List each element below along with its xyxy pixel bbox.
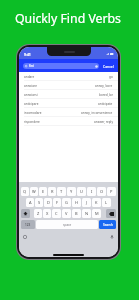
staticText: anticipate bbox=[98, 102, 113, 106]
staticText: P bbox=[110, 189, 113, 194]
button[interactable]: andare bbox=[19, 72, 118, 81]
staticText: Search bbox=[103, 223, 113, 227]
staticText: annoiarsi bbox=[24, 93, 38, 97]
button[interactable]: W bbox=[30, 187, 38, 196]
staticText: S bbox=[38, 200, 41, 205]
staticText: L bbox=[105, 200, 108, 205]
staticText: space bbox=[63, 223, 72, 227]
staticText: J bbox=[86, 200, 88, 205]
button[interactable] bbox=[106, 209, 116, 218]
button[interactable]: H bbox=[72, 198, 81, 207]
button[interactable]: J bbox=[82, 198, 91, 207]
button[interactable]: Z bbox=[34, 209, 42, 218]
staticText: I bbox=[91, 189, 93, 194]
button[interactable]: Q bbox=[21, 187, 29, 196]
button[interactable]: 123 bbox=[21, 220, 35, 229]
button[interactable]: annoiarsi bbox=[19, 90, 118, 99]
staticText: Q bbox=[23, 189, 27, 194]
staticText: G bbox=[65, 200, 68, 205]
button[interactable]: F bbox=[53, 198, 61, 207]
staticText: K bbox=[95, 200, 98, 205]
staticText: A bbox=[29, 200, 32, 205]
staticText: Z bbox=[37, 211, 40, 216]
staticText: andare bbox=[24, 75, 35, 79]
staticText: C bbox=[55, 211, 58, 216]
staticText: H bbox=[75, 200, 78, 205]
button[interactable]: S bbox=[35, 198, 43, 207]
button[interactable]: C bbox=[52, 209, 61, 218]
staticText: 123 bbox=[25, 223, 31, 227]
staticText: 9:41 bbox=[24, 52, 31, 57]
button[interactable]: I bbox=[87, 187, 96, 196]
button[interactable]: incomodare bbox=[19, 108, 118, 117]
staticText: W bbox=[32, 189, 36, 194]
staticText: annoiare bbox=[24, 84, 37, 88]
button[interactable]: X bbox=[43, 209, 51, 218]
button[interactable]: Emoji bbox=[22, 234, 28, 240]
staticText: O bbox=[100, 189, 104, 194]
staticText: F bbox=[56, 200, 59, 205]
button[interactable]: U bbox=[77, 187, 86, 196]
button[interactable]: A bbox=[26, 198, 34, 207]
staticText: bored, be bbox=[99, 93, 113, 97]
button[interactable]: annoiare bbox=[19, 81, 118, 90]
button[interactable]: G bbox=[62, 198, 71, 207]
button[interactable] bbox=[21, 209, 30, 218]
staticText: incomodare bbox=[24, 111, 42, 115]
button[interactable]: anticipare bbox=[19, 99, 118, 108]
button[interactable]: L bbox=[102, 198, 111, 207]
button[interactable]: Cancel bbox=[103, 64, 114, 69]
staticText: E bbox=[42, 189, 45, 194]
staticText: B bbox=[75, 211, 78, 216]
button[interactable]: O bbox=[97, 187, 106, 196]
staticText: V bbox=[65, 211, 68, 216]
button[interactable]: T bbox=[57, 187, 66, 196]
button[interactable]: V bbox=[62, 209, 71, 218]
staticText: anticipare bbox=[24, 102, 39, 106]
button[interactable]: B bbox=[72, 209, 81, 218]
staticText: T bbox=[60, 189, 63, 194]
staticText: X bbox=[46, 211, 49, 216]
button[interactable]: E bbox=[39, 187, 47, 196]
button[interactable]: Search bbox=[99, 220, 116, 229]
staticText: answer, reply bbox=[94, 120, 113, 124]
staticText: M bbox=[95, 211, 99, 216]
button[interactable]: Dictation bbox=[109, 234, 115, 240]
button[interactable]: Y bbox=[67, 187, 76, 196]
staticText: go bbox=[109, 75, 113, 79]
button[interactable]: D bbox=[44, 198, 52, 207]
staticText: annoy, bore bbox=[95, 84, 113, 88]
staticText: rispondere bbox=[24, 120, 40, 124]
staticText: annoy, inconvenience bbox=[81, 111, 113, 115]
button[interactable]: P bbox=[107, 187, 116, 196]
button[interactable]: M bbox=[92, 209, 101, 218]
button[interactable]: N bbox=[82, 209, 91, 218]
button[interactable]: K bbox=[92, 198, 101, 207]
staticText: Y bbox=[70, 189, 73, 194]
staticText: U bbox=[80, 189, 83, 194]
staticText: fini bbox=[29, 64, 34, 68]
button[interactable]: space bbox=[36, 220, 98, 229]
staticText: D bbox=[47, 200, 50, 205]
button[interactable]: R bbox=[48, 187, 56, 196]
staticText: R bbox=[51, 189, 54, 194]
staticText: Quickly Find Verbs bbox=[15, 10, 121, 27]
button[interactable]: fini bbox=[23, 63, 99, 69]
button[interactable]: rispondere bbox=[19, 117, 118, 126]
staticText: N bbox=[85, 211, 89, 216]
